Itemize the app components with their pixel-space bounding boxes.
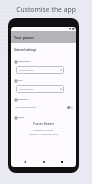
button[interactable]: Font [14,79,73,82]
button[interactable]: Back [21,158,29,166]
button[interactable]: Behaviour [14,98,73,101]
button[interactable]: Home [40,158,48,166]
button[interactable]: Appearance [14,60,73,63]
staticText: Customise the app [0,5,92,14]
staticText: Hide validated passes [15,106,37,109]
button[interactable]: Recents [58,158,66,166]
staticText: Follow system [19,88,34,91]
staticText: Passes Reader [33,122,55,126]
button[interactable]: Follow system [16,85,64,93]
staticText: Follow system [19,69,34,72]
staticText: General settings [14,48,37,52]
button[interactable]: Follow system [16,66,64,74]
button[interactable]: Hide validated passes [14,106,73,109]
staticText: Appearance [18,60,31,63]
staticText: Behaviour [18,98,29,101]
staticText: Created by author [33,128,54,131]
staticText: About [18,116,25,119]
staticText: Version 1.4 (catalog 2024) [29,132,58,135]
staticText: Font [18,79,23,82]
button[interactable]: About [14,116,73,119]
staticText: Your passes [14,35,34,40]
